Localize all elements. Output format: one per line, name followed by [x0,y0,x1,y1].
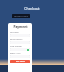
button[interactable]: PAY NOW [10,60,30,63]
staticText: Checkout [24,6,40,11]
button[interactable] [10,48,30,51]
staticText: Expiry / CVC [10,52,21,55]
staticText: Full name [10,31,19,34]
staticText: Card number [10,45,22,48]
staticText: Payment [13,25,28,29]
staticText: SECURE PAYMENT [14,15,29,17]
staticText: Email address [10,38,23,41]
button[interactable]: SECURE PAYMENT [12,14,30,18]
staticText: PAY NOW [16,60,25,63]
